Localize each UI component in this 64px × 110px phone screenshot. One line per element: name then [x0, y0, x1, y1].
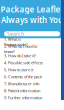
- staticText: 6. Contents of the pack: [4, 74, 42, 79]
- staticText: Always with You: [1, 15, 63, 25]
- staticText: 1. What is Pantoprazole?: [4, 36, 28, 47]
- button[interactable]: 1. What is Pantoprazole?: [0, 38, 64, 45]
- button[interactable]: 9. Further information: [0, 94, 64, 101]
- staticText: 3. How do I take it?: [4, 53, 36, 58]
- button[interactable]: 8. Patient information: [0, 87, 64, 94]
- button[interactable]: 2. What do I need to know?: [0, 45, 64, 52]
- staticText: Package Leaflet: [0, 4, 63, 15]
- button[interactable]: 3. How do I take it?: [0, 52, 64, 59]
- staticText: 9. Further information: [4, 95, 42, 100]
- button[interactable]: 6. Contents of the pack: [0, 73, 64, 80]
- staticText: Search: [7, 30, 24, 37]
- button[interactable]: 4. Possible side effects: [0, 59, 64, 66]
- staticText: 4. Possible side effects: [4, 60, 43, 65]
- staticText: 8. Patient information: [4, 88, 40, 93]
- staticText: 2. What do I need to know?: [4, 43, 37, 54]
- button[interactable]: 5. How to store it: [0, 66, 64, 73]
- staticText: 5. How to store it: [4, 67, 33, 72]
- staticText: 7. Manufacturer info: [4, 81, 39, 86]
- button[interactable]: 7. Manufacturer info: [0, 80, 64, 87]
